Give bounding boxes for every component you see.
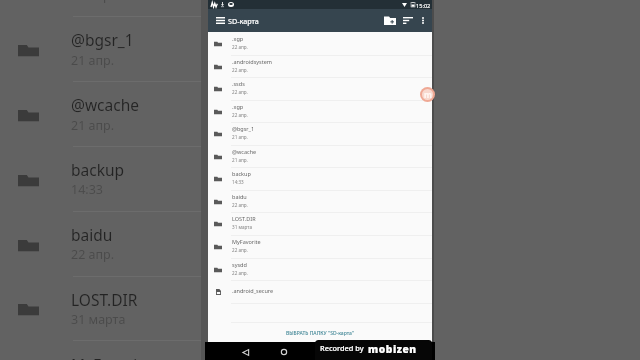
- button[interactable]: New folder: [378, 9, 402, 32]
- button[interactable]: .androidsystem: [208, 55, 432, 78]
- button[interactable]: baidu: [208, 190, 432, 213]
- staticText: 15:02: [416, 2, 431, 10]
- staticText: 22 апр.: [232, 44, 248, 50]
- staticText: 21 апр.: [232, 157, 248, 163]
- button[interactable]: Sort: [399, 9, 416, 32]
- staticText: 31 марта: [232, 224, 252, 230]
- staticText: sysdd: [232, 261, 247, 268]
- button[interactable]: @wcache: [208, 145, 432, 168]
- staticText: ВЫБРАТЬ ПАПКУ "SD-карта": [286, 330, 355, 337]
- staticText: m: [424, 89, 432, 100]
- staticText: 22 апр.: [71, 246, 115, 263]
- button[interactable]: sysdd: [208, 258, 432, 281]
- staticText: 22 апр.: [232, 89, 248, 95]
- staticText: MyFavorite: [232, 238, 261, 245]
- button[interactable]: Menu: [212, 9, 228, 32]
- staticText: .xgp: [232, 35, 244, 42]
- staticText: backup: [232, 170, 251, 177]
- staticText: LOST.DIR: [232, 215, 256, 222]
- button[interactable]: backup: [208, 167, 432, 190]
- staticText: 22 апр.: [232, 112, 248, 118]
- staticText: 14:33: [232, 179, 244, 185]
- button[interactable]: Mobizen: [420, 87, 435, 102]
- button[interactable]: .android_secure: [208, 280, 432, 303]
- staticText: .ssds: [232, 80, 245, 87]
- staticText: @bgsr_1: [71, 29, 134, 50]
- staticText: .android_secure: [232, 287, 274, 294]
- staticText: 21 апр.: [232, 134, 248, 140]
- staticText: .xgp: [232, 103, 244, 110]
- staticText: 21 апр.: [71, 117, 115, 134]
- staticText: LOST.DIR: [71, 289, 138, 310]
- staticText: @bgsr_1: [232, 125, 255, 132]
- staticText: .androidsystem: [232, 58, 272, 65]
- staticText: SD-карта: [228, 16, 259, 26]
- staticText: 21 апр.: [71, 52, 115, 69]
- staticText: @wcache: [232, 148, 257, 155]
- staticText: 22 апр.: [232, 202, 248, 208]
- staticText: Recorded by: [320, 343, 364, 353]
- button[interactable]: MyFavorite: [208, 235, 432, 258]
- button[interactable]: Recents: [314, 344, 330, 360]
- button[interactable]: More options: [415, 9, 430, 32]
- button[interactable]: ВЫБРАТЬ ПАПКУ "SD-карта": [208, 323, 432, 343]
- button[interactable]: .xgp: [208, 32, 432, 55]
- staticText: 22 апр.: [232, 247, 248, 253]
- staticText: baidu: [71, 224, 113, 245]
- staticText: 22 апр.: [232, 67, 248, 73]
- button[interactable]: @bgsr_1: [208, 122, 432, 145]
- button[interactable]: .ssds: [208, 77, 432, 100]
- button[interactable]: .xgp: [208, 100, 432, 123]
- staticText: 14:33: [71, 181, 103, 198]
- button[interactable]: Home: [276, 344, 292, 360]
- staticText: mobizen: [368, 342, 417, 356]
- staticText: 22 апр.: [232, 270, 248, 276]
- staticText: @wcache: [71, 94, 140, 115]
- staticText: MyFavorite: [71, 354, 152, 360]
- staticText: 31 марта: [71, 311, 126, 328]
- button[interactable]: LOST.DIR: [208, 212, 432, 235]
- staticText: baidu: [232, 193, 247, 200]
- button[interactable]: Back: [237, 344, 253, 360]
- staticText: backup: [71, 159, 125, 180]
